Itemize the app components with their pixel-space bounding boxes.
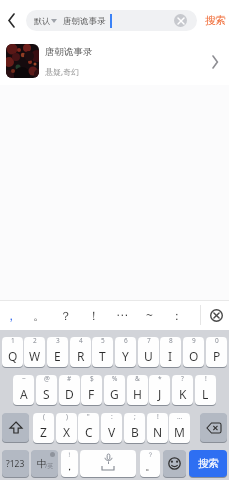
staticText: R	[77, 348, 85, 364]
staticText: A	[20, 386, 28, 402]
button[interactable]	[174, 14, 187, 27]
staticText: 搜索	[205, 14, 226, 27]
staticText: U	[144, 348, 153, 364]
button[interactable]: 唐朝诡事录	[0, 40, 229, 85]
button[interactable]: !	[195, 375, 216, 405]
button[interactable]: ？	[55, 300, 76, 330]
staticText: 唐朝诡事录	[45, 46, 93, 58]
button[interactable]: ~	[13, 375, 34, 405]
staticText: D	[65, 386, 74, 402]
staticText: T	[99, 348, 106, 364]
button[interactable]: 8	[160, 337, 181, 367]
button[interactable]: 2	[24, 337, 45, 367]
staticText: )	[66, 413, 68, 421]
button[interactable]: 5	[92, 337, 113, 367]
button[interactable]: !	[147, 413, 168, 443]
staticText: ？	[60, 308, 72, 323]
button[interactable]: 3	[47, 337, 68, 367]
staticText: ?	[181, 375, 184, 383]
staticText: P	[213, 348, 221, 364]
staticText: ！	[88, 308, 100, 323]
staticText: !	[157, 413, 159, 421]
staticText: ，	[5, 308, 17, 323]
staticText: 。	[33, 308, 45, 323]
button[interactable]: $	[81, 375, 102, 405]
staticText: W	[29, 348, 41, 364]
button[interactable]: ？	[140, 450, 160, 477]
button[interactable]: ：	[166, 300, 187, 330]
staticText: K	[179, 386, 187, 402]
staticText: 4	[79, 337, 83, 345]
button[interactable]: 。	[28, 300, 49, 330]
button[interactable]	[205, 304, 227, 326]
button[interactable]: ⋯	[111, 300, 132, 330]
button[interactable]: ！	[83, 300, 104, 330]
button[interactable]: ?123	[2, 450, 29, 477]
staticText: M	[174, 424, 185, 440]
staticText: 9	[192, 337, 196, 345]
button[interactable]: 默认	[26, 10, 197, 31]
button[interactable]: ！	[61, 450, 78, 477]
button[interactable]: "	[78, 413, 99, 443]
staticText: X	[63, 424, 71, 440]
button[interactable]: @	[36, 375, 57, 405]
staticText: %	[112, 375, 118, 383]
staticText: 默认	[34, 16, 50, 26]
button[interactable]: *	[149, 375, 170, 405]
button[interactable]: :	[101, 413, 122, 443]
staticText: 8	[169, 337, 173, 345]
button[interactable]	[7, 14, 16, 27]
button[interactable]: 1	[2, 337, 23, 367]
button[interactable]: &	[127, 375, 148, 405]
staticText: ？	[147, 451, 154, 459]
staticText: Q	[8, 348, 18, 364]
button[interactable]: 中	[31, 450, 58, 477]
staticText: ，	[64, 459, 75, 473]
button[interactable]	[200, 413, 227, 442]
button[interactable]	[163, 450, 186, 477]
staticText: …	[177, 413, 183, 421]
button[interactable]: ;	[124, 413, 145, 443]
staticText: *	[158, 375, 162, 383]
staticText: #	[67, 375, 72, 383]
staticText: 3	[56, 337, 60, 345]
staticText: ⋯	[116, 308, 128, 322]
button[interactable]	[2, 413, 29, 442]
staticText: I	[168, 348, 173, 364]
staticText: 5	[101, 337, 105, 345]
button[interactable]: …	[169, 413, 190, 443]
button[interactable]: ，	[0, 300, 21, 330]
staticText: E	[54, 348, 61, 364]
staticText: $	[90, 375, 94, 383]
staticText: L	[202, 386, 209, 402]
staticText: (	[43, 413, 45, 421]
button[interactable]: (	[33, 413, 54, 443]
staticText: 6	[124, 337, 128, 345]
staticText: "	[87, 413, 90, 421]
staticText: C	[85, 424, 93, 440]
button[interactable]: %	[104, 375, 125, 405]
button[interactable]: 搜索	[189, 450, 227, 477]
button[interactable]: 9	[183, 337, 204, 367]
staticText: ~	[146, 307, 153, 323]
staticText: ?123	[6, 458, 25, 470]
button[interactable]: 0	[206, 337, 227, 367]
staticText: 搜索	[198, 457, 219, 470]
staticText: ！	[66, 451, 73, 459]
button[interactable]: 搜索	[202, 8, 229, 32]
staticText: ;	[134, 413, 136, 421]
staticText: !	[205, 375, 207, 383]
staticText: 2	[33, 337, 37, 345]
staticText: F	[88, 386, 95, 402]
button[interactable]: )	[56, 413, 77, 443]
button[interactable]: ~	[139, 300, 160, 330]
staticText: V	[108, 424, 116, 440]
button[interactable]: #	[59, 375, 80, 405]
button[interactable]	[80, 450, 136, 477]
button[interactable]: 7	[138, 337, 159, 367]
button[interactable]: ?	[172, 375, 193, 405]
button[interactable]: 6	[115, 337, 136, 367]
staticText: /英	[45, 462, 54, 470]
button[interactable]: 4	[70, 337, 91, 367]
staticText: B	[131, 424, 139, 440]
